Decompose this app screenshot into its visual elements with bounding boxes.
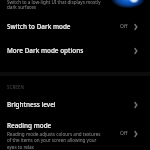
- button[interactable]: More Dark mode options: [0, 46, 150, 60]
- button[interactable]: Switch to Dark mode: [0, 22, 150, 36]
- staticText: More Dark mode options: [7, 46, 84, 55]
- staticText: Brightness level: [7, 100, 56, 109]
- button[interactable]: Dark mode toggle: [110, 0, 150, 8]
- staticText: SCREEN: [7, 84, 25, 90]
- staticText: Off: [120, 130, 128, 137]
- staticText: Switch to Dark mode: [7, 22, 71, 31]
- staticText: Switch to a low-light UI that displays m…: [7, 0, 102, 10]
- button[interactable]: Reading mode: [0, 121, 150, 150]
- staticText: Off: [120, 23, 128, 30]
- staticText: Reading mode: [7, 121, 52, 130]
- button[interactable]: Brightness level: [0, 100, 150, 114]
- staticText: Reading mode adjusts colours and texture…: [7, 131, 104, 150]
